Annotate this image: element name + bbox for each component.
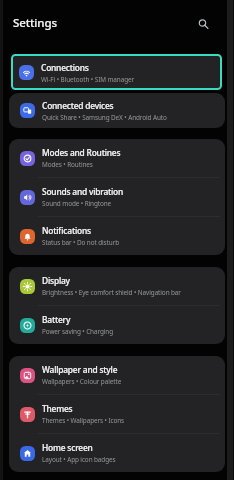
button[interactable] (195, 14, 213, 32)
staticText: Home screen (42, 442, 93, 453)
button[interactable]: Notifications (9, 217, 225, 255)
staticText: Brightness • Eye comfort shield • Naviga… (42, 288, 181, 297)
staticText: Sound mode • Ringtone (42, 199, 112, 208)
staticText: Connections (41, 62, 89, 73)
staticText: Quick Share • Samsung DeX • Android Auto (42, 113, 167, 122)
staticText: Power saving • Charging (42, 327, 113, 336)
staticText: Settings (13, 15, 57, 31)
button[interactable]: Display (9, 267, 225, 305)
staticText: Battery (42, 314, 71, 325)
staticText: Connected devices (42, 100, 114, 111)
staticText: Notifications (42, 225, 91, 236)
staticText: Display (42, 275, 70, 286)
staticText: Wallpapers • Colour palette (42, 377, 122, 386)
staticText: Wi-Fi • Bluetooth • SIM manager (41, 75, 135, 84)
staticText: Modes and Routines (42, 147, 121, 158)
staticText: Themes • Wallpapers • Icons (42, 416, 125, 425)
button[interactable]: Themes (9, 395, 225, 433)
staticText: Modes • Routines (42, 160, 93, 169)
button[interactable]: Connections (13, 56, 221, 89)
button[interactable]: Modes and Routines (9, 139, 225, 177)
staticText: Themes (42, 403, 73, 414)
button[interactable]: Battery (9, 306, 225, 344)
staticText: Wallpaper and style (42, 364, 118, 375)
staticText: Sounds and vibration (42, 186, 124, 197)
staticText: Status bar • Do not disturb (42, 238, 120, 247)
button[interactable]: Home screen (9, 434, 225, 472)
button[interactable]: Sounds and vibration (9, 178, 225, 216)
button[interactable]: Wallpaper and style (9, 356, 225, 394)
staticText: Layout • App icon badges (42, 455, 116, 464)
button[interactable]: Connected devices (9, 93, 225, 128)
